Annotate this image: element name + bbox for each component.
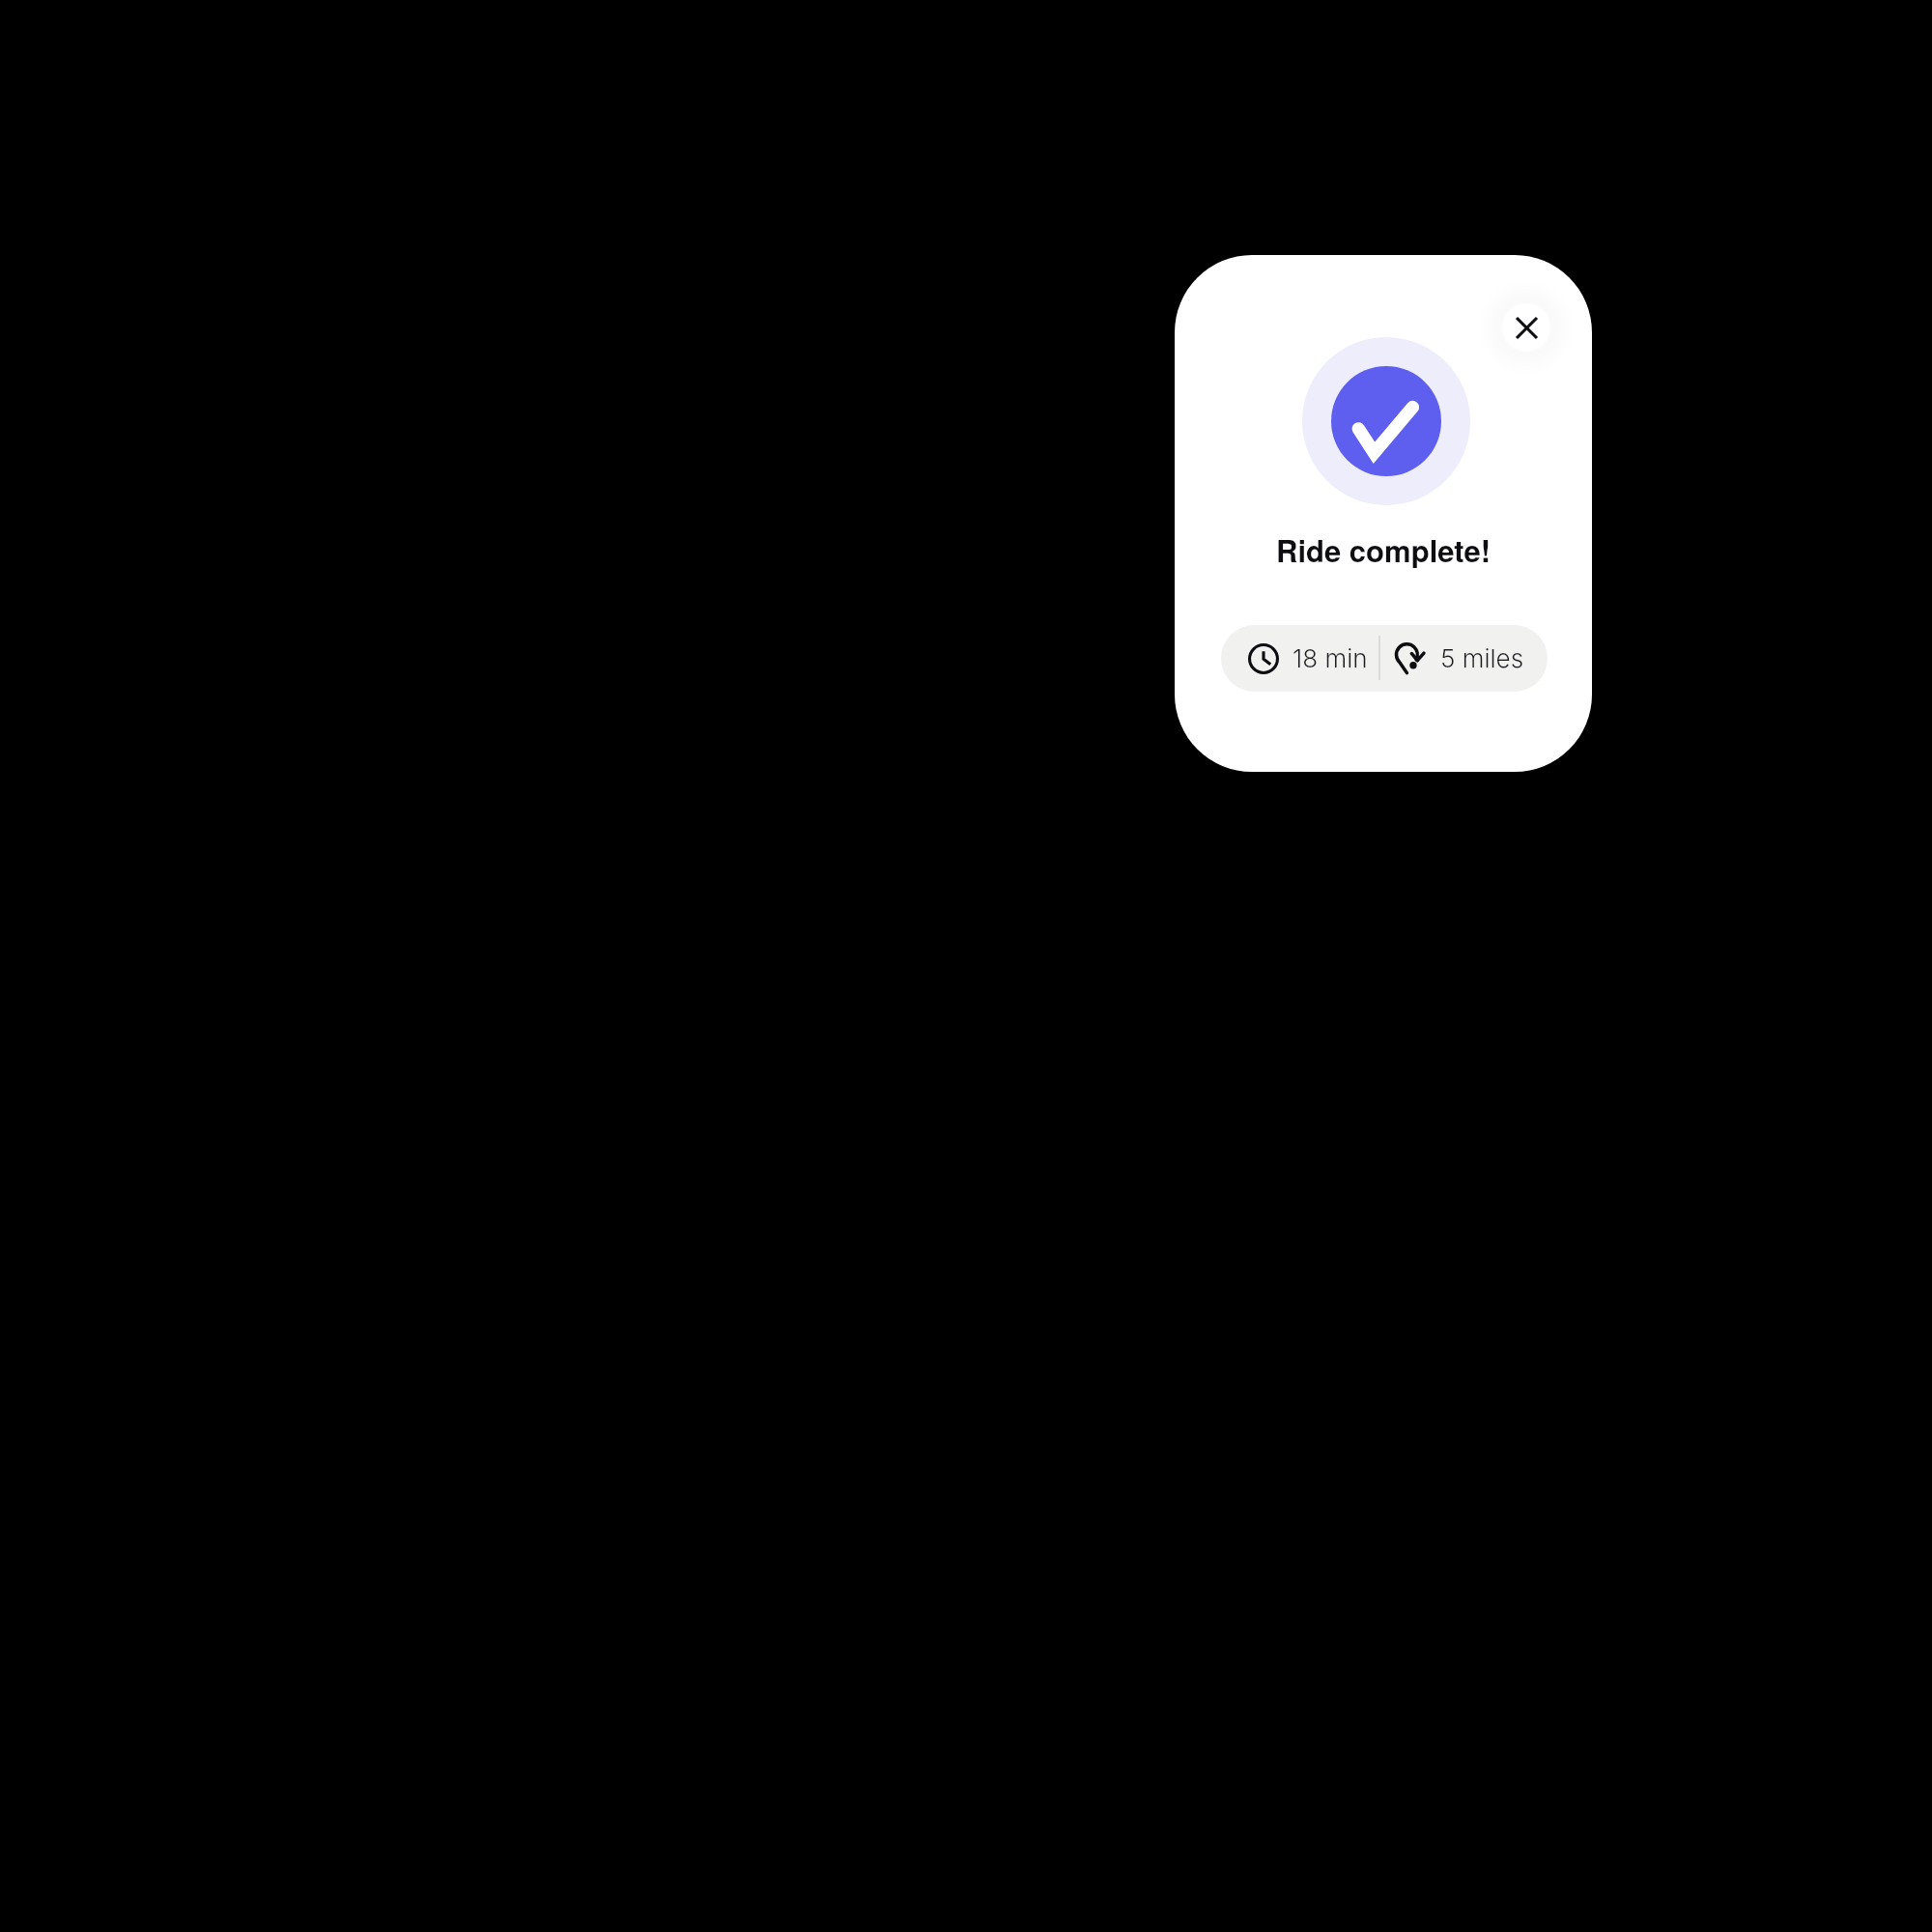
other: Duration [1248,643,1279,674]
staticText: 5 miles [1440,643,1524,673]
button[interactable]: Close [1478,279,1575,376]
staticText: 18 min [1293,643,1368,673]
other: Distance [1394,642,1426,674]
staticText: Ride complete! [1276,528,1492,571]
